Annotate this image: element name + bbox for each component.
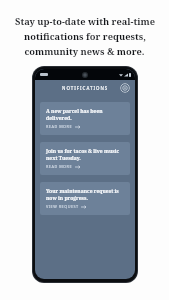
staticText: notifications for requests, xyxy=(24,30,146,43)
staticText: Join us for tacos & live music next Tues… xyxy=(46,148,124,161)
staticText: READ MORE xyxy=(46,164,73,169)
button[interactable]: Settings xyxy=(120,83,130,93)
staticText: READ MORE xyxy=(46,124,73,129)
staticText: VIEW REQUEST xyxy=(46,204,79,209)
staticText: Your maintenance request is now in progr… xyxy=(46,188,124,201)
staticText: community news & more. xyxy=(24,45,145,58)
button[interactable]: Your maintenance request is now in progr… xyxy=(40,182,130,215)
staticText: Stay up-to-date with real-time xyxy=(15,15,155,28)
button[interactable]: Join us for tacos & live music next Tues… xyxy=(40,142,130,175)
staticText: NOTIFICATIONS xyxy=(62,85,109,91)
staticText: A new parcel has been delivered. xyxy=(46,108,124,121)
button[interactable]: A new parcel has been delivered. xyxy=(40,102,130,135)
